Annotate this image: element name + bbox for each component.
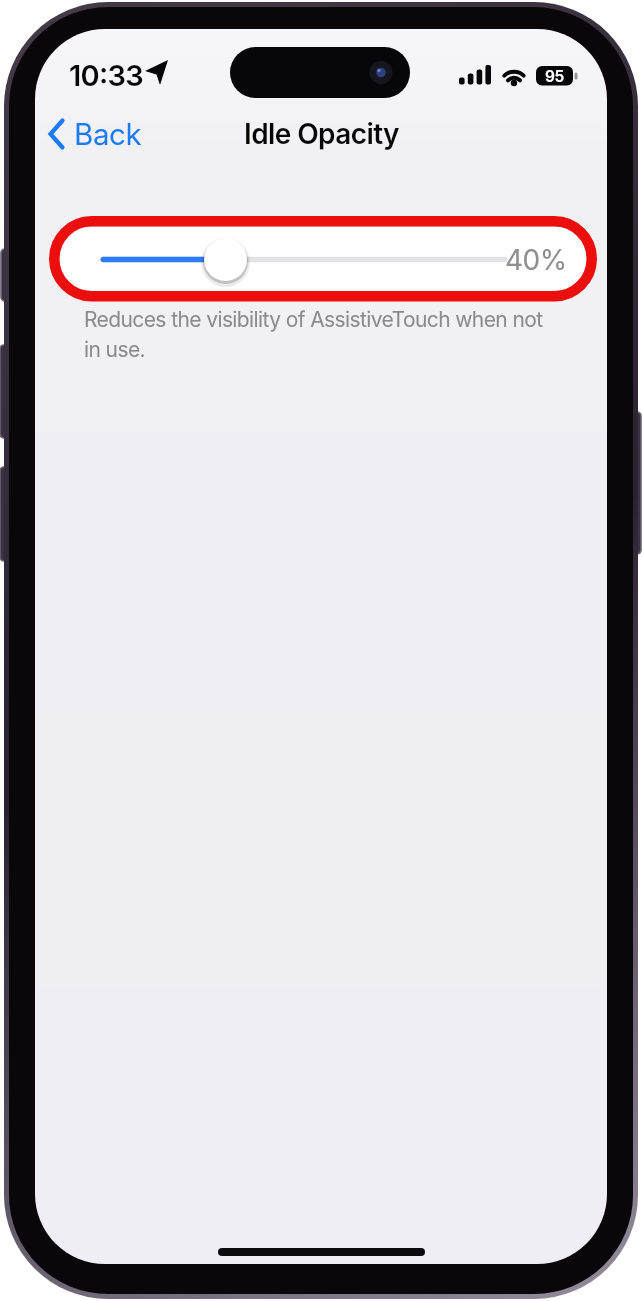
- staticText: 40%: [505, 243, 567, 277]
- staticText: Idle Opacity: [244, 117, 399, 151]
- staticText: Back: [74, 116, 142, 152]
- button[interactable]: Back: [43, 109, 142, 159]
- staticText: in use.: [84, 337, 145, 362]
- staticText: 95: [545, 67, 564, 86]
- staticText: 10:33: [69, 58, 144, 93]
- staticText: Reduces the visibility of AssistiveTouch…: [84, 307, 543, 332]
- button[interactable]: 40%: [60, 227, 587, 292]
